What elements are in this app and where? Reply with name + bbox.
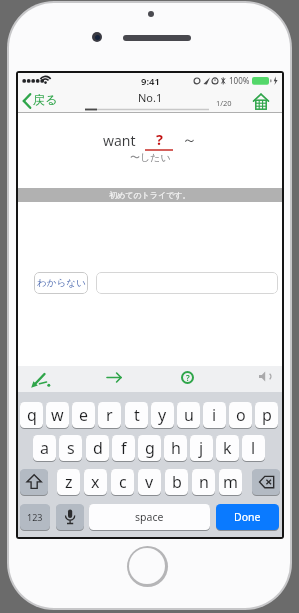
staticText: u [184, 404, 194, 426]
button[interactable]: l [242, 435, 265, 461]
staticText: f [121, 437, 127, 459]
staticText: o [236, 404, 246, 426]
button[interactable]: s [59, 435, 82, 461]
button[interactable]: わからない [34, 272, 88, 294]
button[interactable]: w [46, 402, 69, 428]
button[interactable] [129, 548, 165, 584]
staticText: m [223, 471, 238, 493]
button[interactable]: f [112, 435, 135, 461]
staticText: q [27, 404, 37, 426]
button[interactable]: t [125, 402, 148, 428]
button[interactable]: Done [216, 504, 279, 530]
staticText: want [103, 131, 136, 150]
staticText: 1/20 [216, 98, 232, 108]
button[interactable]: v [138, 469, 161, 495]
staticText: ～ [182, 131, 197, 150]
button[interactable]: p [255, 402, 278, 428]
button[interactable]: e [72, 402, 95, 428]
staticText: p [262, 404, 272, 426]
button[interactable]: k [216, 435, 239, 461]
staticText: w [51, 404, 64, 426]
button[interactable]: i [203, 402, 226, 428]
button[interactable]: u [177, 402, 200, 428]
button[interactable]: r [98, 402, 121, 428]
staticText: v [145, 471, 154, 493]
button[interactable]: z [57, 469, 80, 495]
staticText: space [135, 510, 164, 524]
staticText: t [134, 404, 140, 426]
staticText: x [91, 471, 100, 493]
staticText: 〜したい [130, 151, 171, 164]
staticText: y [158, 404, 167, 426]
staticText: ? [156, 129, 163, 149]
button[interactable]: ? [181, 371, 194, 384]
staticText: Done [234, 510, 261, 524]
staticText: c [119, 471, 127, 493]
staticText: No.1 [138, 90, 163, 105]
button[interactable]: q [20, 402, 43, 428]
staticText: l [251, 437, 256, 459]
button[interactable] [20, 469, 48, 495]
staticText: b [172, 471, 182, 493]
button[interactable]: x [84, 469, 107, 495]
button[interactable] [104, 368, 126, 390]
staticText: s [67, 437, 75, 459]
staticText: 123 [27, 511, 43, 523]
button[interactable]: space [89, 504, 210, 530]
button[interactable]: h [164, 435, 187, 461]
button[interactable]: j [190, 435, 213, 461]
staticText: a [40, 437, 49, 459]
button[interactable] [96, 272, 278, 294]
button[interactable]: g [138, 435, 161, 461]
staticText: g [145, 437, 155, 459]
staticText: 初めてのトライです。 [109, 190, 191, 200]
button[interactable]: b [165, 469, 188, 495]
staticText: 戻る [33, 92, 58, 107]
button[interactable]: n [192, 469, 215, 495]
staticText: h [171, 437, 181, 459]
button[interactable]: a [33, 435, 56, 461]
button[interactable]: d [86, 435, 109, 461]
button[interactable]: y [151, 402, 174, 428]
staticText: e [79, 404, 89, 426]
button[interactable]: 戻る [20, 89, 62, 111]
staticText: 9:41 [141, 75, 160, 88]
button[interactable] [252, 469, 280, 495]
button[interactable] [28, 368, 54, 390]
staticText: z [65, 471, 73, 493]
button[interactable] [56, 504, 84, 530]
button[interactable]: m [219, 469, 242, 495]
staticText: ? [186, 372, 190, 383]
button[interactable] [256, 368, 278, 390]
staticText: k [223, 437, 232, 459]
staticText: n [199, 471, 209, 493]
staticText: d [93, 437, 103, 459]
staticText: i [212, 404, 217, 426]
staticText: 100% [229, 75, 250, 86]
button[interactable]: c [111, 469, 134, 495]
staticText: わからない [37, 277, 86, 289]
button[interactable] [250, 90, 272, 112]
button[interactable]: 123 [20, 504, 50, 530]
staticText: j [199, 437, 204, 459]
staticText: r [106, 404, 113, 426]
button[interactable]: o [229, 402, 252, 428]
